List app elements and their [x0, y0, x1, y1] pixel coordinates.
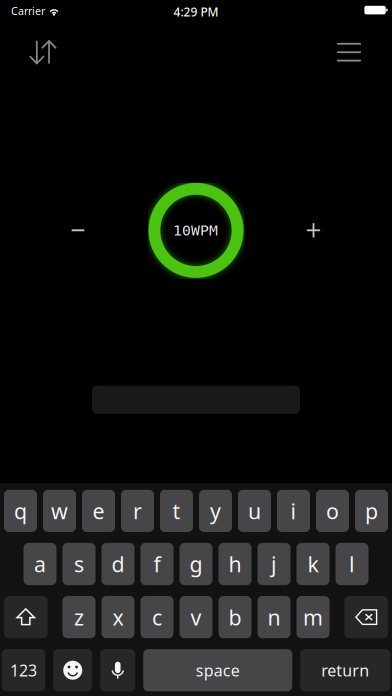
button[interactable]: Sort: [21, 30, 65, 74]
staticText: 4:29 PM: [173, 4, 218, 20]
staticText: d: [111, 550, 124, 578]
staticText: s: [74, 550, 84, 578]
staticText: q: [14, 497, 27, 525]
staticText: c: [152, 603, 162, 631]
staticText: a: [34, 550, 46, 578]
button[interactable]: b: [218, 596, 251, 638]
staticText: b: [228, 603, 241, 631]
staticText: k: [307, 550, 318, 578]
staticText: t: [172, 497, 180, 525]
staticText: i: [290, 497, 296, 525]
button[interactable]: e: [82, 490, 115, 532]
button[interactable]: Emoji: [53, 649, 92, 691]
button[interactable]: f: [140, 543, 173, 585]
button[interactable]: Delete: [344, 596, 388, 638]
staticText: m: [303, 603, 323, 631]
staticText: v: [190, 603, 201, 631]
staticText: Carrier: [11, 4, 45, 18]
button[interactable]: 123: [2, 649, 45, 691]
staticText: p: [365, 497, 378, 525]
staticText: x: [112, 603, 123, 631]
button[interactable]: p: [355, 490, 388, 532]
staticText: l: [349, 550, 355, 578]
button[interactable]: m: [296, 596, 329, 638]
staticText: 123: [10, 660, 37, 681]
button[interactable]: w: [43, 490, 76, 532]
staticText: u: [248, 497, 261, 525]
button[interactable]: return: [300, 649, 390, 691]
button[interactable]: z: [62, 596, 95, 638]
staticText: space: [196, 660, 240, 681]
button[interactable]: y: [199, 490, 232, 532]
button[interactable]: s: [62, 543, 95, 585]
staticText: f: [153, 550, 160, 578]
button[interactable]: d: [101, 543, 134, 585]
button[interactable]: Menu: [327, 30, 371, 74]
staticText: r: [133, 497, 142, 525]
staticText: return: [321, 660, 369, 681]
button[interactable]: j: [257, 543, 290, 585]
button[interactable]: x: [101, 596, 134, 638]
button[interactable]: a: [23, 543, 56, 585]
button[interactable]: r: [121, 490, 154, 532]
staticText: g: [189, 550, 202, 578]
button[interactable]: k: [296, 543, 329, 585]
button[interactable]: space: [143, 649, 292, 691]
button[interactable]: Increase speed: [291, 208, 335, 252]
staticText: h: [228, 550, 241, 578]
button[interactable]: g: [179, 543, 212, 585]
button[interactable]: o: [316, 490, 349, 532]
button[interactable]: i: [277, 490, 310, 532]
button[interactable]: n: [257, 596, 290, 638]
button[interactable]: h: [218, 543, 251, 585]
staticText: y: [210, 497, 221, 525]
button[interactable]: l: [335, 543, 368, 585]
staticText: w: [51, 497, 68, 525]
staticText: e: [92, 497, 104, 525]
button[interactable]: Decrease speed: [56, 208, 100, 252]
button[interactable]: u: [238, 490, 271, 532]
staticText: j: [271, 550, 277, 578]
staticText: 10WPM: [173, 222, 218, 239]
button[interactable]: Shift: [4, 596, 47, 638]
staticText: n: [267, 603, 280, 631]
button[interactable]: Dictation: [100, 649, 135, 691]
staticText: o: [326, 497, 339, 525]
staticText: z: [74, 603, 84, 631]
button[interactable]: q: [4, 490, 37, 532]
button[interactable]: c: [140, 596, 173, 638]
button[interactable]: v: [179, 596, 212, 638]
button[interactable]: t: [160, 490, 193, 532]
